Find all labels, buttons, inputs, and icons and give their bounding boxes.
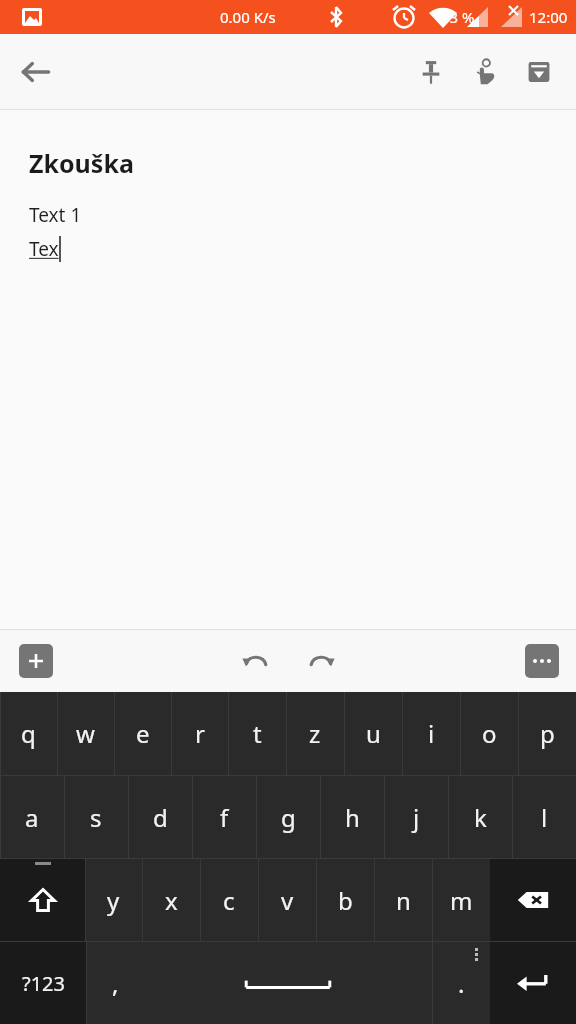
- button[interactable]: j: [384, 776, 448, 858]
- staticText: l: [541, 801, 548, 834]
- staticText: r: [195, 717, 205, 750]
- button[interactable]: r: [171, 692, 228, 775]
- button[interactable]: g: [256, 776, 320, 858]
- button[interactable]: Pin: [404, 45, 458, 99]
- staticText: Text 1: [29, 202, 82, 228]
- staticText: h: [345, 801, 360, 834]
- staticText: g: [281, 801, 296, 834]
- button[interactable]: o: [460, 692, 518, 775]
- button[interactable]: k: [448, 776, 512, 858]
- staticText: w: [76, 717, 95, 750]
- staticText: n: [396, 884, 411, 917]
- staticText: d: [153, 801, 168, 834]
- button[interactable]: x: [142, 859, 200, 941]
- button[interactable]: t: [228, 692, 286, 775]
- button[interactable]: f: [192, 776, 256, 858]
- button[interactable]: n: [374, 859, 432, 941]
- button[interactable]: z: [286, 692, 344, 775]
- staticText: 0.00 K/s: [220, 7, 276, 27]
- staticText: 13 %: [441, 7, 475, 27]
- staticText: p: [540, 717, 555, 750]
- staticText: x: [165, 884, 178, 917]
- button[interactable]: ?123: [0, 942, 86, 1024]
- button[interactable]: h: [320, 776, 384, 858]
- button[interactable]: u: [344, 692, 402, 775]
- staticText: o: [482, 717, 497, 750]
- staticText: b: [338, 884, 353, 917]
- button[interactable]: q: [0, 692, 57, 775]
- staticText: q: [21, 717, 36, 750]
- staticText: ,: [112, 967, 119, 1000]
- staticText: y: [107, 884, 120, 917]
- staticText: i: [428, 717, 435, 750]
- button[interactable]: Undo: [232, 638, 278, 684]
- staticText: j: [413, 801, 420, 834]
- staticText: s: [90, 801, 102, 834]
- button[interactable]: l: [512, 776, 576, 858]
- staticText: m: [450, 884, 473, 917]
- button[interactable]: v: [258, 859, 316, 941]
- button[interactable]: p: [518, 692, 576, 775]
- staticText: e: [136, 717, 150, 750]
- button[interactable]: Add: [19, 644, 53, 678]
- button[interactable]: a: [0, 776, 64, 858]
- staticText: Zkouška: [29, 146, 134, 180]
- button[interactable]: d: [128, 776, 192, 858]
- staticText: z: [309, 717, 321, 750]
- button[interactable]: s: [64, 776, 128, 858]
- button[interactable]: y: [85, 859, 142, 941]
- button[interactable]: Shift: [0, 859, 85, 941]
- button[interactable]: c: [200, 859, 258, 941]
- staticText: k: [474, 801, 487, 834]
- button[interactable]: Backspace: [490, 859, 576, 941]
- button[interactable]: ,: [86, 942, 144, 1024]
- staticText: u: [366, 717, 381, 750]
- staticText: ?123: [22, 970, 65, 997]
- staticText: a: [25, 801, 39, 834]
- button[interactable]: Space: [144, 942, 432, 1024]
- button[interactable]: More options: [525, 644, 559, 678]
- button[interactable]: Archive: [512, 45, 566, 99]
- button[interactable]: Tap action: [458, 45, 512, 99]
- button[interactable]: Redo: [299, 638, 345, 684]
- button[interactable]: w: [57, 692, 114, 775]
- staticText: t: [253, 717, 262, 750]
- staticText: c: [223, 884, 235, 917]
- button[interactable]: i: [402, 692, 460, 775]
- staticText: v: [281, 884, 294, 917]
- button[interactable]: .: [432, 942, 490, 1024]
- button[interactable]: Enter: [490, 942, 576, 1024]
- button[interactable]: e: [114, 692, 171, 775]
- staticText: f: [220, 801, 229, 834]
- staticText: 12:00: [529, 7, 568, 27]
- button[interactable]: b: [316, 859, 374, 941]
- button[interactable]: m: [432, 859, 490, 941]
- staticText: .: [458, 967, 465, 1000]
- button[interactable]: Back: [8, 44, 64, 100]
- staticText: Tex: [29, 236, 59, 262]
